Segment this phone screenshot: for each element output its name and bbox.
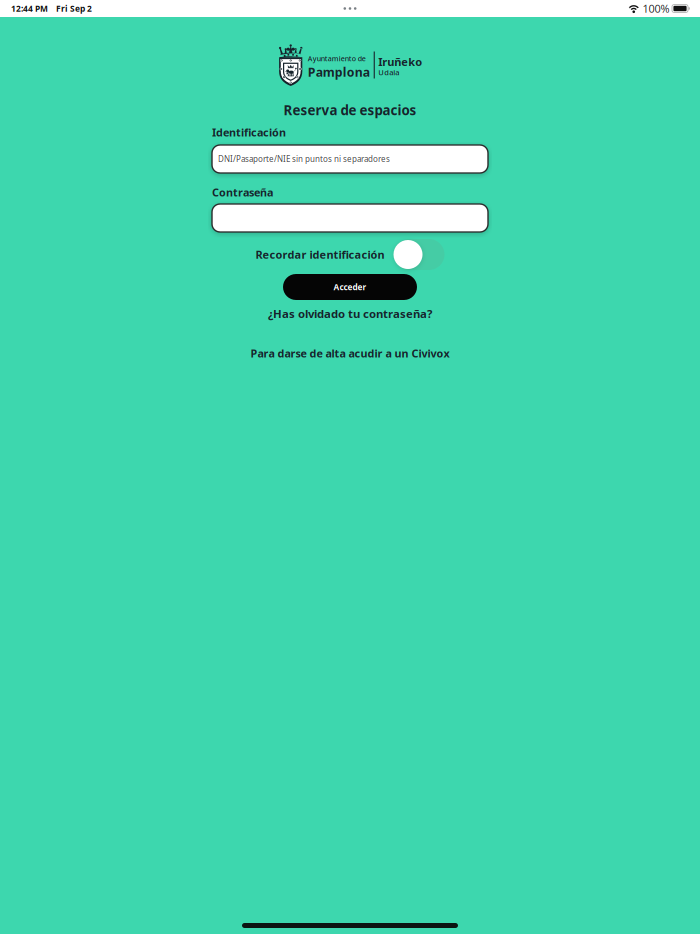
staticText: Acceder xyxy=(333,281,366,293)
staticText: Udala xyxy=(378,67,399,77)
staticText: Fri Sep 2 xyxy=(56,3,92,14)
button[interactable]: ¿Has olvidado tu contraseña? xyxy=(268,306,432,321)
staticText: 12:44 PM xyxy=(11,3,48,14)
staticText: Ayuntamiento de xyxy=(308,54,366,63)
staticText: Contraseña xyxy=(212,185,273,200)
staticText: Iruñeko xyxy=(378,54,422,69)
staticText: Pamplona xyxy=(308,64,370,80)
staticText: Recordar identificación xyxy=(255,247,384,262)
staticText: Identificación xyxy=(212,125,286,140)
staticText: Reserva de espacios xyxy=(283,101,416,119)
staticText: Para darse de alta acudir a un Civivox xyxy=(250,346,449,361)
staticText: ¿Has olvidado tu contraseña? xyxy=(268,306,432,321)
staticText: DNI/Pasaporte/NIE sin puntos ni separado… xyxy=(218,154,390,164)
button[interactable]: Recordar identificación xyxy=(393,239,444,270)
button[interactable]: Acceder xyxy=(283,274,417,300)
staticText: 100% xyxy=(642,1,669,16)
